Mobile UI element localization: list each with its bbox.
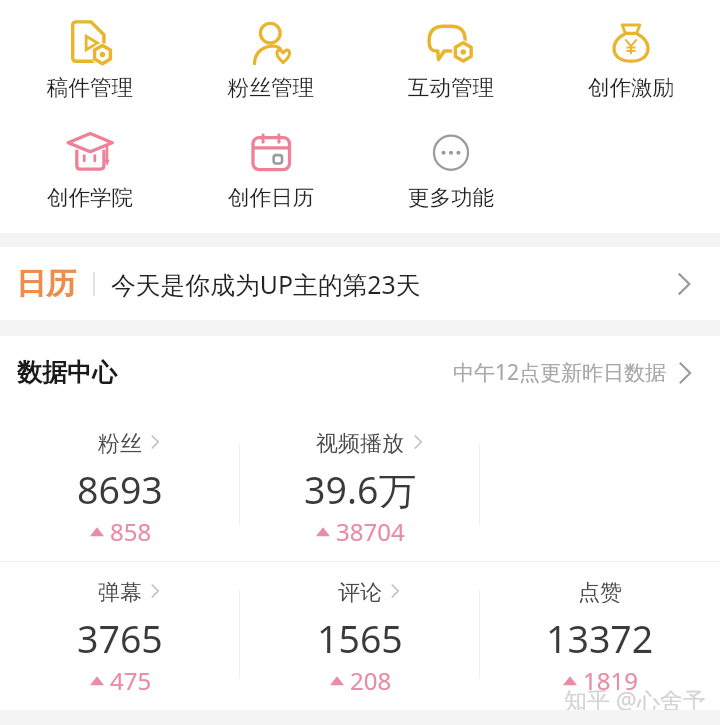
button[interactable]: 创作日历 [181, 116, 361, 216]
staticText: 创作学院 [0, 184, 180, 211]
button[interactable]: 中午12点更新昨日数据 [453, 358, 696, 387]
staticText: 互动管理 [361, 74, 541, 101]
staticText: 8693 [77, 464, 163, 515]
button[interactable]: 粉丝 [0, 430, 240, 562]
staticText: 今天是你成为UP主的第23天 [111, 267, 421, 301]
staticText: 创作日历 [181, 184, 361, 211]
staticText: 中午12点更新昨日数据 [453, 358, 667, 387]
staticText: 858 [110, 515, 152, 548]
button[interactable]: 创作激励 [541, 7, 720, 107]
button[interactable]: 评论 [240, 579, 480, 711]
staticText: 38704 [336, 515, 405, 548]
staticText: 评论 [338, 579, 382, 603]
staticText: 知乎 @心舍予 [564, 684, 706, 715]
staticText: 日历 [16, 265, 76, 303]
button[interactable]: 粉丝管理 [181, 7, 361, 107]
staticText: 点赞 [578, 579, 622, 603]
button[interactable]: 互动管理 [361, 7, 541, 107]
staticText: 更多功能 [361, 184, 541, 211]
button[interactable]: 稿件管理 [0, 7, 180, 107]
staticText: 视频播放 [316, 430, 404, 454]
button[interactable]: 弹幕 [0, 579, 240, 711]
staticText: 13372 [546, 613, 654, 664]
staticText: 创作激励 [541, 74, 720, 101]
staticText: 1565 [317, 613, 403, 664]
staticText: 弹幕 [98, 579, 142, 603]
staticText: 粉丝管理 [181, 74, 361, 101]
staticText: 39.6万 [304, 464, 416, 515]
button[interactable]: 创作学院 [0, 116, 180, 216]
staticText: 稿件管理 [0, 74, 180, 101]
staticText: 208 [350, 664, 392, 697]
staticText: 1819 [583, 664, 638, 697]
staticText: 粉丝 [98, 430, 142, 454]
button[interactable]: 点赞 [480, 579, 720, 711]
staticText: 475 [110, 664, 152, 697]
staticText: 数据中心 [17, 357, 117, 388]
staticText: 3765 [77, 613, 163, 664]
button[interactable]: 视频播放 [240, 430, 480, 562]
other: Open calendar [672, 272, 696, 296]
button[interactable]: 日历 [0, 247, 720, 320]
button[interactable]: 更多功能 [361, 116, 541, 216]
